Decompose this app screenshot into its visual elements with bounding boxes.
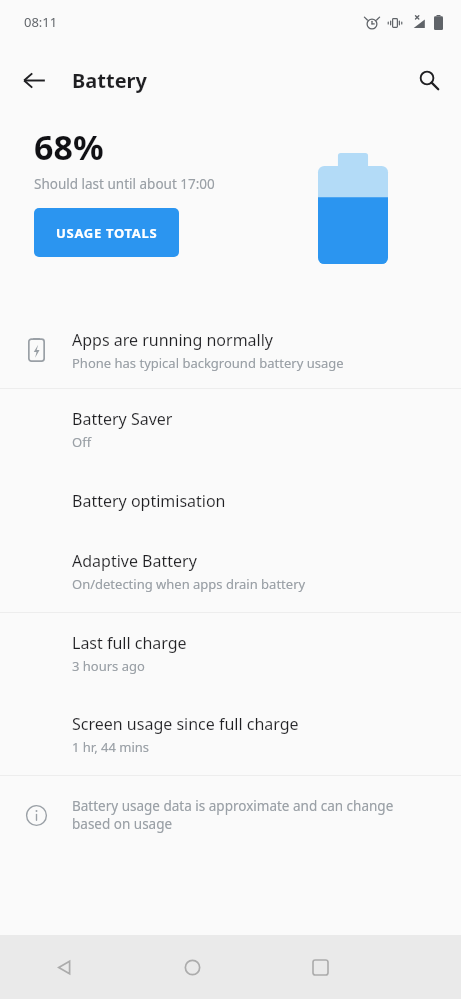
button[interactable]: Adaptive Battery	[0, 531, 461, 612]
staticText: Apps are running normally	[72, 329, 273, 351]
staticText: 08:11	[24, 13, 58, 31]
staticText: Battery	[72, 67, 147, 94]
staticText: 1 hr, 44 mins	[72, 738, 150, 756]
staticText: Battery Saver	[72, 408, 173, 430]
staticText: Battery usage data is approximate and ca…	[72, 797, 435, 833]
button[interactable]: Recents	[256, 935, 384, 999]
button[interactable]: Last full charge	[0, 613, 461, 694]
staticText: Screen usage since full charge	[72, 713, 299, 735]
staticText: Should last until about 17:00	[34, 175, 215, 193]
staticText: Phone has typical background battery usa…	[72, 354, 344, 372]
staticText: USAGE TOTALS	[56, 224, 158, 242]
button[interactable]: Screen usage since full charge	[0, 694, 461, 775]
button[interactable]: Home	[128, 935, 256, 999]
button[interactable]: Back	[0, 935, 128, 999]
button[interactable]: Apps are running normally	[0, 312, 461, 388]
button[interactable]: Search	[405, 56, 453, 104]
button[interactable]: Back	[10, 56, 58, 104]
button[interactable]: Battery optimisation	[0, 470, 461, 531]
staticText: Last full charge	[72, 632, 187, 654]
button[interactable]: USAGE TOTALS	[34, 208, 179, 257]
button[interactable]: Battery Saver	[0, 389, 461, 470]
staticText: 3 hours ago	[72, 657, 145, 675]
staticText: Adaptive Battery	[72, 550, 197, 572]
staticText: Off	[72, 433, 92, 451]
staticText: 68%	[34, 124, 104, 170]
staticText: Battery optimisation	[72, 490, 226, 512]
staticText: On/detecting when apps drain battery	[72, 575, 306, 593]
